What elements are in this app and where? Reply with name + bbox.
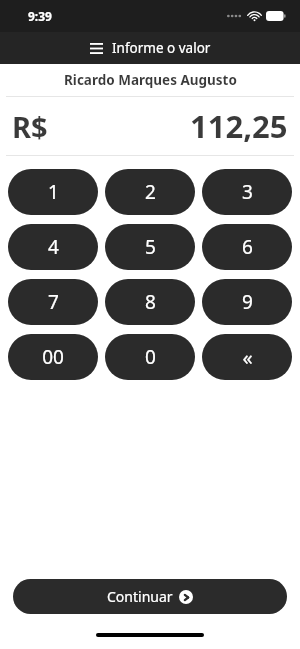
staticText: 9 [242, 289, 253, 315]
button[interactable]: 8 [105, 279, 195, 325]
staticText: Continuar [107, 587, 173, 606]
staticText: 7 [48, 289, 59, 315]
button[interactable]: 5 [105, 224, 195, 270]
button[interactable]: 0 [105, 334, 195, 380]
staticText: 6 [242, 234, 253, 260]
staticText: 3 [242, 179, 253, 205]
button[interactable]: Menu [0, 32, 300, 64]
button[interactable]: Backspace [202, 334, 292, 380]
staticText: 1 [48, 179, 59, 205]
button[interactable]: 3 [202, 169, 292, 215]
staticText: Ricardo Marques Augusto [64, 71, 237, 89]
staticText: 112,25 [190, 105, 288, 147]
button[interactable]: 6 [202, 224, 292, 270]
staticText: 8 [145, 289, 156, 315]
staticText: 4 [48, 234, 59, 260]
staticText: Informe o valor [112, 39, 211, 57]
staticText: 0 [145, 344, 156, 370]
button[interactable]: 00 [8, 334, 98, 380]
staticText: 5 [145, 234, 156, 260]
button[interactable]: 4 [8, 224, 98, 270]
button[interactable]: 9 [202, 279, 292, 325]
staticText: 2 [145, 179, 156, 205]
button[interactable]: 2 [105, 169, 195, 215]
button[interactable]: 1 [8, 169, 98, 215]
staticText: « [242, 344, 253, 371]
button[interactable]: 7 [8, 279, 98, 325]
staticText: 9:39 [28, 8, 52, 24]
staticText: 00 [42, 344, 64, 370]
staticText: R$ [12, 107, 48, 146]
other: Menu [90, 43, 103, 54]
button[interactable]: Continuar [13, 579, 287, 614]
